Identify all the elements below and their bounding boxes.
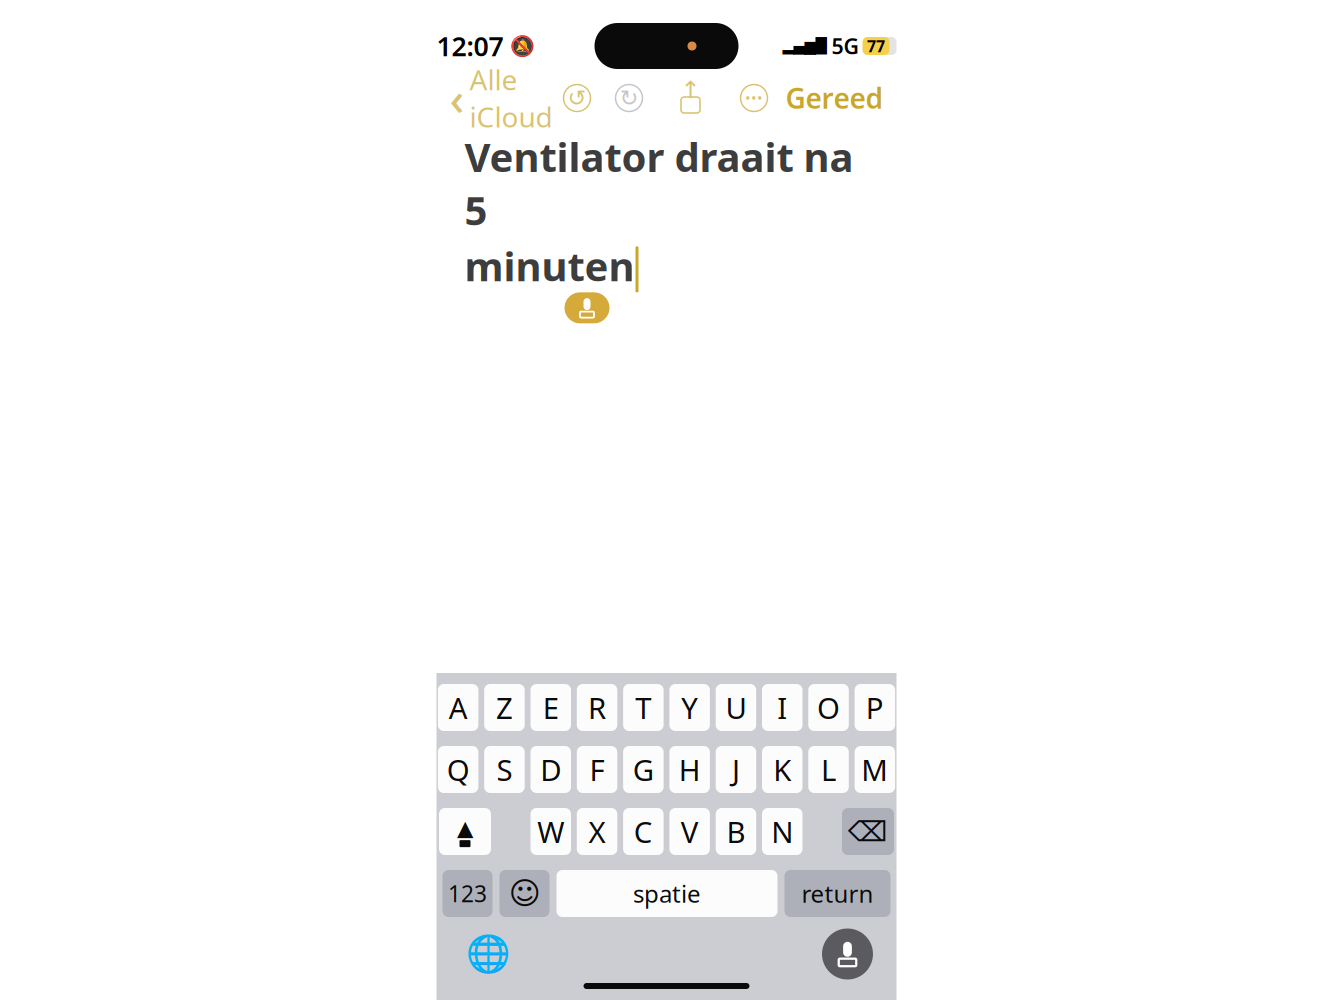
staticText: 77: [867, 35, 885, 57]
staticText: E: [543, 688, 559, 727]
button[interactable]: R: [577, 684, 617, 731]
button[interactable]: 123: [442, 870, 492, 917]
staticText: ▂▄▆█: [782, 38, 826, 54]
button[interactable]: Emoji: [499, 870, 549, 917]
staticText: I: [777, 688, 787, 727]
staticText: T: [635, 688, 651, 727]
staticText: ↻: [619, 85, 638, 111]
button[interactable]: D: [530, 746, 571, 793]
staticText: return: [801, 878, 873, 909]
button[interactable]: E: [530, 684, 571, 731]
staticText: P: [866, 688, 884, 727]
button[interactable]: Delete: [842, 808, 894, 855]
staticText: X: [588, 812, 605, 851]
staticText: W: [537, 812, 564, 851]
staticText: minuten: [464, 239, 634, 292]
button[interactable]: Redo: [613, 82, 644, 113]
staticText: Z: [496, 688, 513, 727]
button[interactable]: G: [623, 746, 664, 793]
staticText: F: [589, 750, 604, 789]
staticText: D: [540, 750, 561, 789]
staticText: ▲: [457, 816, 473, 840]
staticText: 5G: [831, 32, 858, 60]
staticText: O: [817, 688, 840, 727]
button[interactable]: N: [762, 808, 802, 855]
button[interactable]: Gereed: [785, 79, 883, 117]
button[interactable]: Next keyboard: [467, 933, 509, 975]
staticText: U: [725, 688, 746, 727]
staticText: B: [726, 812, 745, 851]
button[interactable]: C: [623, 808, 664, 855]
button[interactable]: B: [716, 808, 756, 855]
button[interactable]: ‹: [449, 61, 552, 135]
button[interactable]: Dictation: [822, 928, 873, 979]
staticText: •••: [745, 88, 763, 108]
staticText: ↑: [680, 76, 700, 104]
staticText: N: [771, 812, 793, 851]
staticText: Q: [447, 750, 470, 789]
staticText: Alle iCloud: [469, 61, 552, 135]
button[interactable]: Undo: [561, 82, 592, 113]
staticText: 12:07: [436, 28, 503, 64]
button[interactable]: Dictate: [564, 292, 609, 323]
staticText: spatie: [633, 878, 701, 909]
staticText: A: [449, 688, 468, 727]
staticText: K: [773, 750, 791, 789]
button[interactable]: U: [716, 684, 756, 731]
button[interactable]: V: [669, 808, 710, 855]
button[interactable]: K: [762, 746, 802, 793]
button[interactable]: Y: [669, 684, 710, 731]
button[interactable]: L: [808, 746, 849, 793]
staticText: Y: [681, 688, 698, 727]
button[interactable]: return: [784, 870, 890, 917]
staticText: 123: [448, 878, 487, 908]
button[interactable]: X: [577, 808, 617, 855]
button[interactable]: A: [438, 684, 478, 731]
button[interactable]: Share: [674, 81, 706, 115]
button[interactable]: F: [577, 746, 617, 793]
staticText: J: [732, 750, 740, 789]
staticText: Ventilator draait na 5: [464, 130, 853, 236]
staticText: G: [633, 750, 654, 789]
button[interactable]: More options: [738, 82, 769, 113]
staticText: Gereed: [785, 79, 883, 117]
staticText: R: [588, 688, 606, 727]
staticText: S: [496, 750, 512, 789]
button[interactable]: M: [855, 746, 895, 793]
staticText: V: [681, 812, 699, 851]
button[interactable]: Q: [438, 746, 478, 793]
button[interactable]: spatie: [556, 870, 777, 917]
staticText: ⌫: [848, 816, 888, 847]
staticText: 🌐: [465, 933, 510, 974]
button[interactable]: O: [808, 684, 849, 731]
button[interactable]: H: [669, 746, 710, 793]
staticText: 🔕: [509, 35, 534, 57]
button[interactable]: Shift: [439, 808, 491, 855]
button[interactable]: Z: [484, 684, 525, 731]
staticText: ‹: [449, 68, 464, 128]
button[interactable]: I: [762, 684, 802, 731]
staticText: M: [861, 750, 888, 789]
staticText: ☺: [508, 876, 540, 911]
button[interactable]: S: [484, 746, 525, 793]
staticText: ↺: [567, 85, 586, 111]
staticText: H: [679, 750, 701, 789]
staticText: L: [821, 750, 836, 789]
button[interactable]: W: [530, 808, 571, 855]
button[interactable]: J: [716, 746, 756, 793]
button[interactable]: T: [623, 684, 664, 731]
button[interactable]: P: [855, 684, 895, 731]
staticText: C: [634, 812, 653, 851]
